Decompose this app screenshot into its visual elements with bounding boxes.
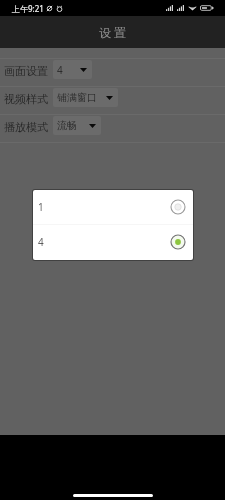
staticText: 上午9:21 bbox=[12, 3, 44, 14]
button[interactable]: 4 bbox=[33, 225, 193, 259]
button[interactable]: 流畅 bbox=[53, 116, 101, 135]
staticText: 设 置 bbox=[99, 24, 127, 40]
staticText: 视频样式 bbox=[4, 92, 48, 106]
staticText: 铺满窗口 bbox=[57, 91, 97, 104]
button[interactable]: 1 bbox=[33, 190, 193, 224]
staticText: 1 bbox=[38, 200, 44, 214]
staticText: 4 bbox=[57, 63, 63, 77]
button[interactable]: 铺满窗口 bbox=[53, 88, 118, 107]
staticText: 播放模式 bbox=[4, 120, 48, 134]
staticText: 流畅 bbox=[57, 119, 77, 132]
button[interactable]: 视频样式 bbox=[0, 87, 225, 114]
staticText: 4 bbox=[38, 235, 44, 249]
button[interactable]: 画面设置 bbox=[0, 59, 225, 86]
button[interactable]: 播放模式 bbox=[0, 115, 225, 142]
staticText: 画面设置 bbox=[4, 64, 48, 78]
button[interactable]: 4 bbox=[53, 60, 92, 79]
